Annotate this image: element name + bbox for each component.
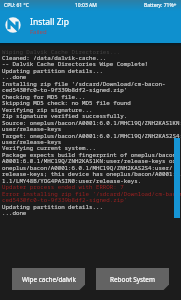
staticText: Updating partition details...	[2, 67, 103, 75]
button[interactable]: Reboot System	[96, 268, 169, 290]
staticText: Error installing zip file '/sdcard/Downl…	[2, 190, 181, 198]
staticText: Wipe cache/dalvik	[22, 275, 76, 284]
staticText: Verifying zip signature...	[2, 106, 93, 114]
staticText: Updater process ended with ERROR: 7	[2, 183, 124, 191]
staticText: ced5430fc0-to-9f339b8df2-signed.zip'	[2, 196, 128, 204]
staticText: Checking for MD5 file...	[2, 93, 86, 101]
staticText: oneplus/bacon/A0001:6.0.1/MHC19Q/ZNH2KAS…	[2, 164, 173, 172]
staticText: Updating partition details...	[2, 203, 103, 211]
staticText: Battery: 71%+	[144, 2, 177, 9]
staticText: CPU: 61 °C	[4, 2, 29, 9]
staticText: A0001:6.0.1/MHC19Q/ZNH2KAS1KN:user/relea…	[2, 157, 176, 165]
button[interactable]: Wipe cache/dalvik	[12, 268, 85, 290]
staticText: Installing zip file '/sdcard/Download/cm…	[2, 80, 166, 88]
staticText: Failed	[30, 28, 47, 36]
staticText: Verifying current system...	[2, 144, 96, 152]
staticText: Source: oneplus/bacon/A0001:6.0.1/MHC19Q…	[2, 119, 181, 127]
staticText: ...done	[2, 209, 27, 217]
staticText: ced5430fc0-to-9f339b8df2-signed.zip'	[2, 86, 128, 94]
staticText: Wiping Dalvik Cache Directories...	[2, 48, 121, 56]
other: TWRP	[5, 17, 21, 33]
staticText: -- Dalvik Cache Directories Wipe Complet…	[2, 60, 149, 68]
staticText: ...done	[2, 73, 27, 81]
staticText: 1.1/LMY48B/YOG4PASIN0:user/release-keys.	[2, 177, 142, 185]
staticText: user/release-keys	[2, 125, 62, 133]
staticText: Install Zip	[30, 16, 69, 28]
staticText: Reboot System	[110, 275, 155, 284]
staticText: Zip signature verified successfully.	[2, 112, 128, 120]
staticText: user/release-keys	[2, 138, 62, 146]
staticText: 10:03 AM	[75, 2, 97, 9]
staticText: Package expects build fingerprint of one…	[2, 151, 180, 159]
staticText: release-keys; this device has oneplus/ba…	[2, 170, 181, 178]
staticText: Target: oneplus/bacon/A0001:6.0.1/MHC19Q…	[2, 132, 181, 140]
staticText: Skipping MD5 check: no MD5 file found	[2, 99, 131, 107]
staticText: Cleaned: /data/dalvik-cache...	[2, 54, 107, 62]
